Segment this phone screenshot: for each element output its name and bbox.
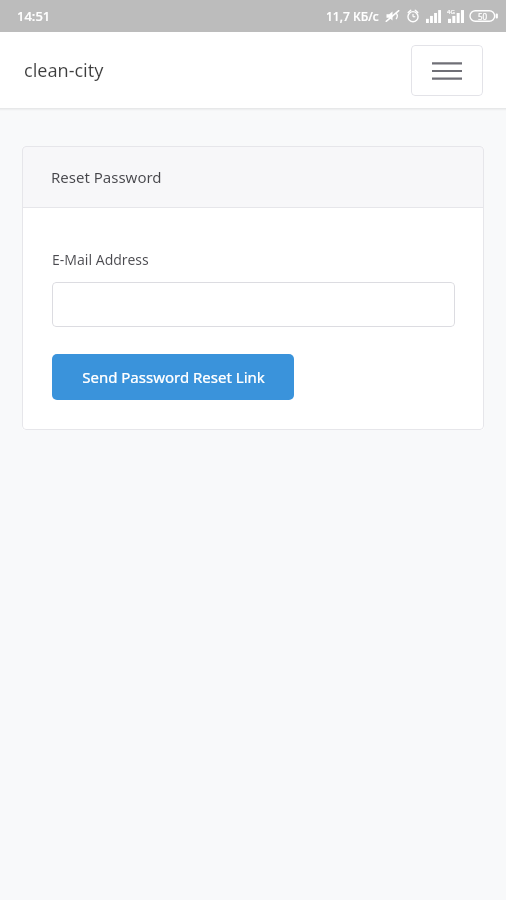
button[interactable]: Open navigation menu [411, 45, 483, 96]
staticText: Send Password Reset Link [82, 367, 265, 387]
button[interactable]: E-Mail Address input [52, 282, 455, 327]
button[interactable]: Send Password Reset Link [52, 354, 294, 400]
staticText: Reset Password [51, 167, 162, 187]
staticText: 4G [447, 8, 455, 16]
staticText: 50 [478, 11, 488, 22]
staticText: 14:51 [17, 7, 51, 25]
staticText: 11,7 КБ/с [326, 8, 379, 24]
staticText: clean-city [24, 58, 104, 83]
staticText: E-Mail Address [52, 250, 149, 269]
